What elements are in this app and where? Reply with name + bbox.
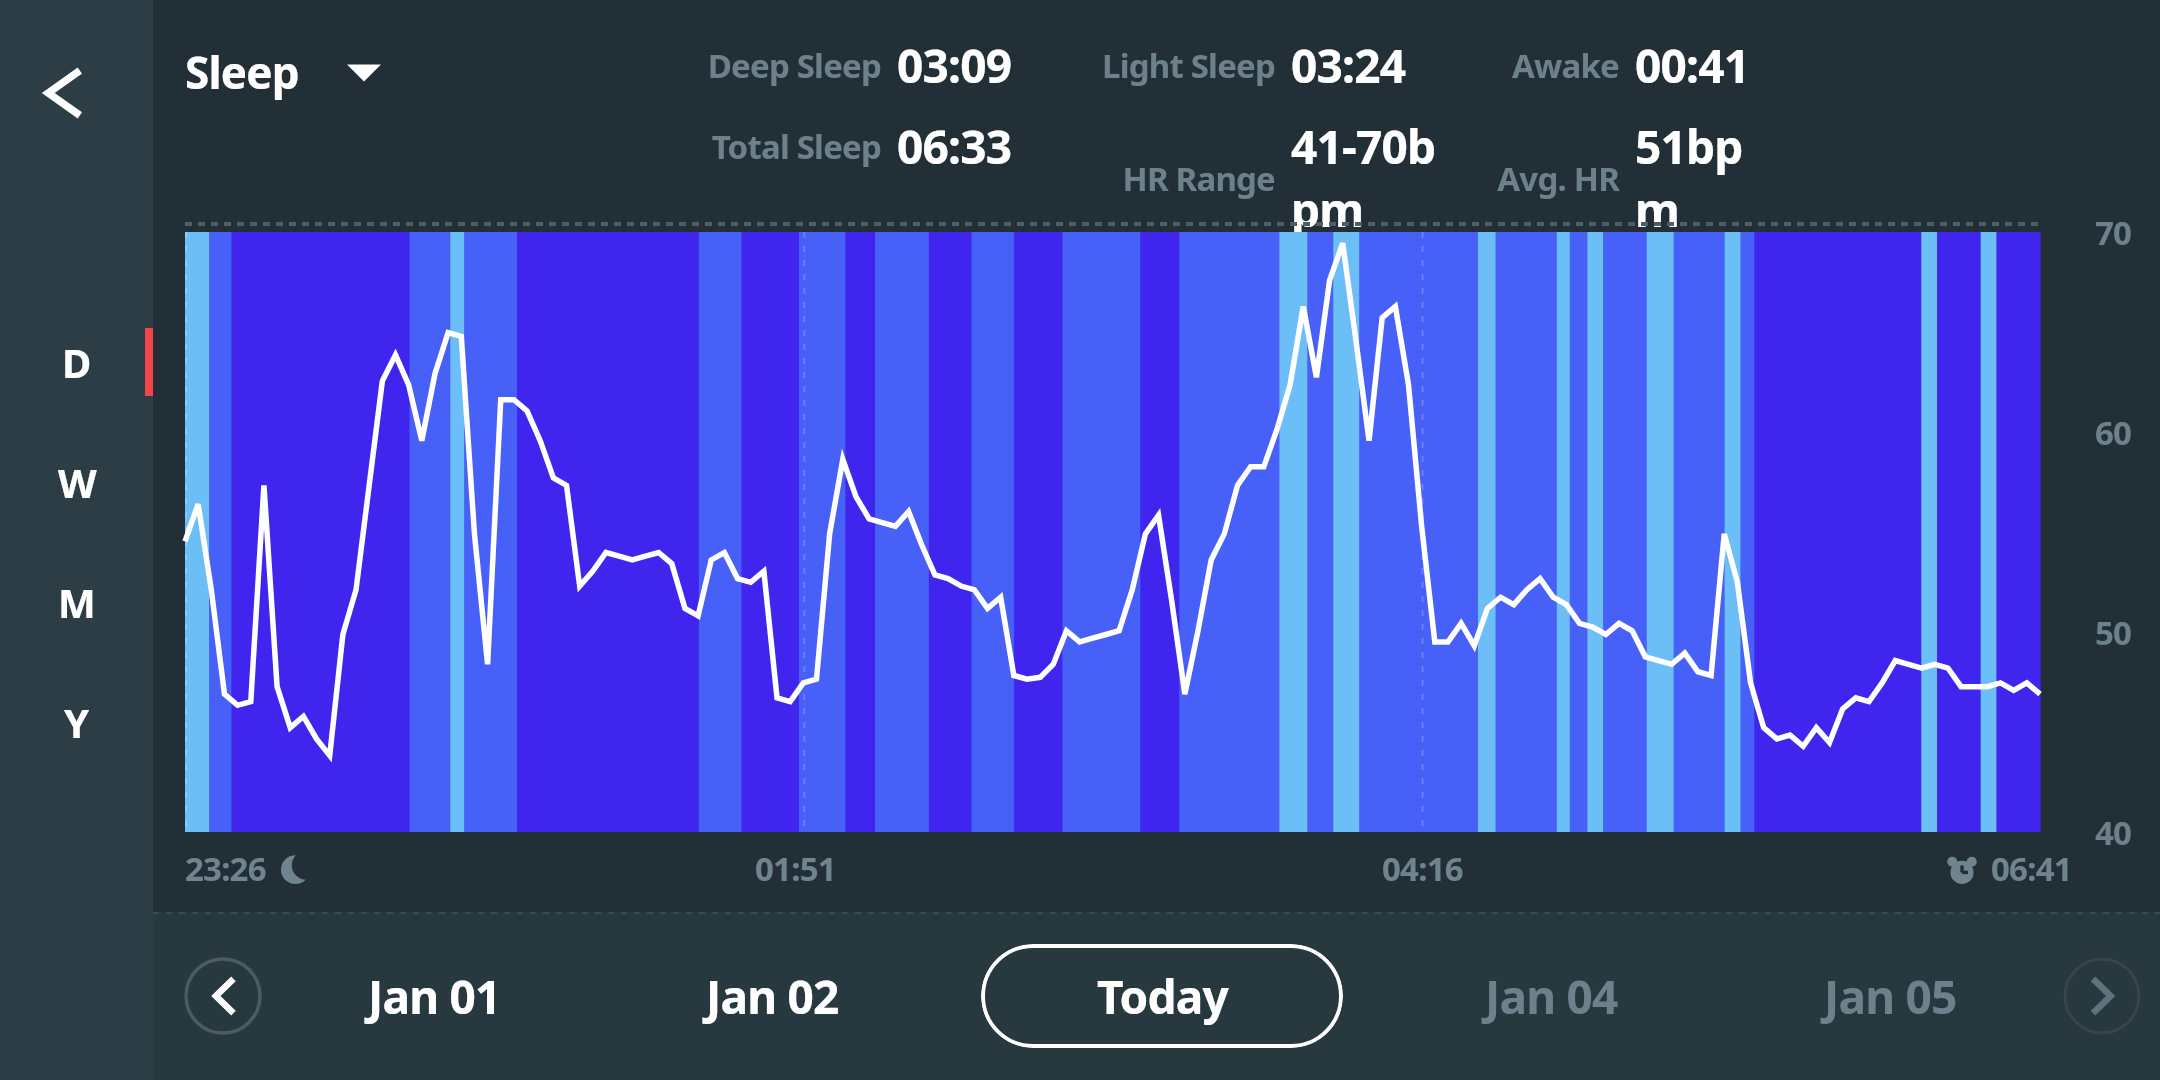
staticText: Y [64, 695, 89, 749]
staticText: HR Range [1122, 156, 1275, 201]
button[interactable]: Next day [2060, 954, 2144, 1038]
staticText: Jan 01 [368, 965, 501, 1028]
button[interactable]: Y [0, 678, 153, 766]
staticText: 00:41 [1635, 34, 1750, 97]
staticText: 01:51 [755, 846, 836, 891]
button[interactable]: W [0, 438, 153, 526]
button[interactable]: Previous day [181, 954, 265, 1038]
staticText: 23:26 [185, 846, 266, 891]
staticText: 06:33 [897, 115, 1012, 178]
staticText: 03:09 [897, 34, 1012, 97]
staticText: 51bpm [1635, 115, 1765, 241]
button[interactable]: Back [20, 50, 106, 136]
staticText: Jan 04 [1485, 965, 1618, 1028]
staticText: Jan 02 [706, 965, 839, 1028]
staticText: 06:41 [1991, 846, 2072, 891]
button[interactable]: Select metric [337, 45, 391, 99]
staticText: Total Sleep [711, 124, 881, 169]
staticText: Light Sleep [1102, 43, 1275, 88]
staticText: D [62, 335, 91, 389]
staticText: Jan 05 [1824, 965, 1957, 1028]
staticText: 70 [2095, 210, 2132, 255]
staticText: 03:24 [1291, 34, 1406, 97]
staticText: Awake [1511, 43, 1619, 88]
staticText: 41-70bpm [1291, 115, 1441, 241]
staticText: Today [1097, 965, 1228, 1028]
button[interactable]: Today [981, 944, 1343, 1048]
staticText: Deep Sleep [707, 43, 881, 88]
button[interactable]: M [0, 558, 153, 646]
button[interactable]: Jan 01 [265, 912, 603, 1080]
button[interactable]: D [0, 318, 153, 406]
button[interactable]: Jan 04 [1382, 912, 1721, 1080]
staticText: M [58, 575, 95, 629]
button[interactable]: Jan 02 [603, 912, 942, 1080]
staticText: Avg. HR [1497, 156, 1619, 201]
staticText: 50 [2095, 610, 2132, 655]
staticText: 60 [2095, 410, 2132, 455]
staticText: 40 [2095, 810, 2132, 855]
staticText: W [58, 455, 96, 509]
button[interactable]: Jan 05 [1721, 912, 2060, 1080]
staticText: 04:16 [1382, 846, 1463, 891]
staticText: Sleep [185, 42, 299, 102]
